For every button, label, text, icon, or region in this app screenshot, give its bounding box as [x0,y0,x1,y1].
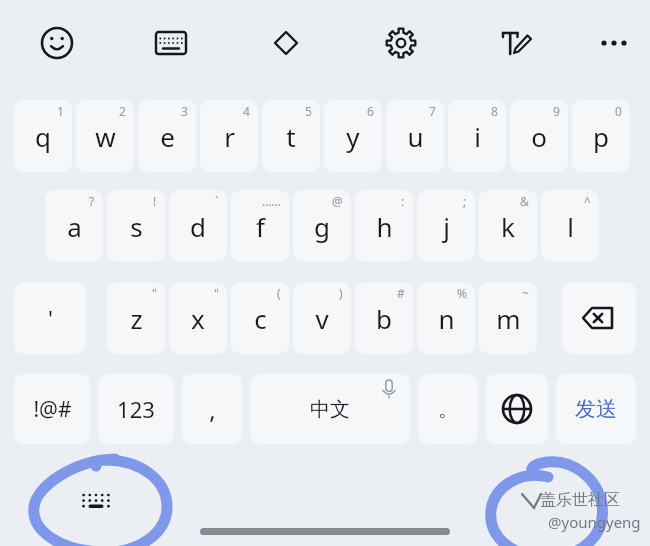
staticText: % [457,285,467,301]
button[interactable]: Emoji [31,17,83,69]
button[interactable]: g [293,190,351,262]
staticText: r [224,119,235,154]
staticText: b [376,301,392,336]
staticText: ; [463,193,467,209]
button[interactable]: y [324,100,382,172]
staticText: 中文 [310,397,350,422]
button[interactable]: More options [588,17,640,69]
staticText: @youngyeng [548,512,641,532]
staticText: 123 [117,394,155,424]
staticText: 8 [491,103,498,119]
button[interactable]: 中文 [250,374,410,444]
staticText: f [256,209,265,244]
button[interactable]: s [107,190,165,262]
button[interactable]: m [479,282,537,354]
staticText: ? [89,193,95,209]
staticText: 1 [57,103,64,119]
button[interactable]: Settings [375,17,427,69]
button[interactable]: 123 [98,374,174,444]
staticText: 0 [615,103,622,119]
staticText: k [501,209,515,244]
staticText: i [474,119,481,154]
button[interactable]: 。 [418,374,478,444]
button[interactable]: Backspace [562,282,636,354]
staticText: q [35,119,51,154]
staticText: 4 [243,103,250,119]
button[interactable]: , [182,374,242,444]
staticText: c [254,301,267,336]
button[interactable]: q [14,100,72,172]
button[interactable]: t [262,100,320,172]
staticText: d [190,209,206,244]
staticText: x [191,301,205,336]
button[interactable]: o [510,100,568,172]
staticText: s [130,209,143,244]
button[interactable]: n [417,282,475,354]
button[interactable]: Handwriting [490,17,542,69]
staticText: 5 [305,103,312,119]
staticText: : [401,193,405,209]
button[interactable]: h [355,190,413,262]
staticText: 。 [438,397,458,422]
button[interactable]: e [138,100,196,172]
staticText: 盖乐世社区 [540,490,620,510]
staticText: ` [215,193,219,209]
button[interactable]: !@# [14,374,90,444]
button[interactable]: l [541,190,599,262]
staticText: & [520,193,529,209]
button[interactable]: x [169,282,227,354]
button[interactable]: p [572,100,630,172]
staticText: ' [48,303,53,333]
button[interactable]: r [200,100,258,172]
staticText: 3 [181,103,188,119]
button[interactable]: Move cursor [260,17,312,69]
button[interactable]: d [169,190,227,262]
button[interactable]: a [45,190,103,262]
staticText: " [152,285,157,301]
staticText: w [95,119,116,154]
staticText: n [438,301,455,336]
staticText: ( [277,285,281,301]
staticText: " [214,285,219,301]
button[interactable]: u [386,100,444,172]
button[interactable]: 发送 [556,374,636,444]
staticText: l [567,209,574,244]
staticText: t [286,119,296,154]
staticText: p [593,119,609,154]
button[interactable]: ' [14,282,86,354]
button[interactable]: j [417,190,475,262]
staticText: ^ [584,193,591,209]
staticText: ! [153,193,157,209]
staticText: h [376,209,393,244]
button[interactable]: k [479,190,537,262]
button[interactable]: c [231,282,289,354]
staticText: ~ [522,285,529,301]
staticText: 2 [119,103,126,119]
button[interactable]: z [107,282,165,354]
button[interactable]: Keyboard layout [145,17,197,69]
button[interactable]: i [448,100,506,172]
staticText: !@# [33,395,72,424]
staticText: @ [332,193,343,209]
staticText: j [443,209,450,244]
button[interactable]: b [355,282,413,354]
staticText: a [67,209,82,244]
staticText: 9 [553,103,560,119]
staticText: ) [339,285,343,301]
staticText: u [407,119,424,154]
staticText: m [496,301,521,336]
button[interactable]: v [293,282,351,354]
button[interactable]: w [76,100,134,172]
button[interactable]: Switch language [486,374,548,444]
staticText: z [130,301,143,336]
staticText: v [315,301,329,336]
staticText: 发送 [575,396,617,422]
button[interactable]: f [231,190,289,262]
staticText: 7 [429,103,436,119]
staticText: g [314,209,330,244]
staticText: # [397,285,405,301]
button[interactable]: Hide keyboard [68,483,124,519]
staticText: , [209,393,216,426]
staticText: e [160,119,175,154]
staticText: y [346,119,360,154]
